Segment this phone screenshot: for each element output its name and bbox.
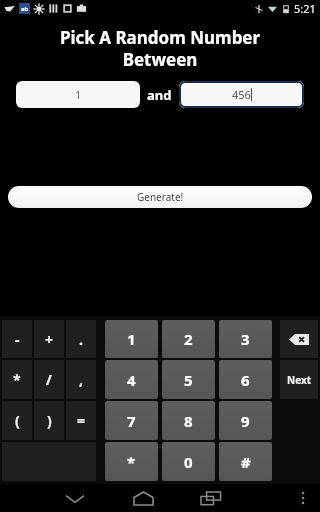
staticText: = bbox=[77, 411, 86, 430]
button[interactable]: , bbox=[66, 360, 96, 399]
button[interactable]: 6 bbox=[219, 360, 272, 399]
button[interactable]: 7 bbox=[105, 401, 158, 440]
button[interactable]: 2 bbox=[162, 320, 215, 358]
staticText: 9 bbox=[241, 411, 250, 431]
staticText: 456 bbox=[232, 87, 251, 102]
staticText: , bbox=[79, 370, 83, 389]
staticText: Pick A Random Number Between bbox=[12, 26, 308, 71]
button[interactable]: 456 bbox=[179, 81, 304, 108]
staticText: - bbox=[15, 330, 20, 349]
staticText: 1 bbox=[75, 87, 82, 102]
button[interactable]: 5 bbox=[162, 360, 215, 399]
button[interactable]: 0 bbox=[162, 442, 215, 481]
button[interactable]: * bbox=[105, 442, 158, 481]
button[interactable]: # bbox=[219, 442, 272, 481]
button[interactable]: 9 bbox=[219, 401, 272, 440]
button[interactable]: 1 bbox=[105, 320, 158, 358]
staticText: + bbox=[45, 330, 54, 349]
button[interactable]: ) bbox=[34, 401, 64, 440]
button[interactable]: More options bbox=[290, 484, 316, 512]
staticText: 3 bbox=[241, 329, 250, 349]
staticText: * bbox=[127, 452, 136, 472]
button[interactable]: Recent apps bbox=[192, 484, 230, 512]
button[interactable]: 8 bbox=[162, 401, 215, 440]
button[interactable]: = bbox=[66, 401, 96, 440]
button[interactable]: ( bbox=[2, 401, 32, 440]
staticText: 4 bbox=[127, 370, 136, 390]
button[interactable]: Next bbox=[280, 360, 318, 399]
button[interactable]: * bbox=[2, 360, 32, 399]
staticText: 0 bbox=[184, 452, 193, 472]
staticText: 5:21 bbox=[294, 1, 316, 16]
staticText: # bbox=[241, 452, 251, 472]
staticText: ( bbox=[15, 411, 20, 430]
button[interactable]: Backspace bbox=[280, 320, 318, 358]
staticText: Next bbox=[287, 373, 312, 387]
staticText: 1 bbox=[127, 329, 136, 349]
button[interactable]: - bbox=[2, 320, 32, 358]
staticText: and bbox=[147, 86, 172, 104]
button[interactable]: + bbox=[34, 320, 64, 358]
staticText: Generate! bbox=[137, 190, 184, 204]
staticText: / bbox=[46, 370, 52, 389]
staticText: ) bbox=[47, 411, 52, 430]
staticText: * bbox=[13, 370, 21, 389]
button[interactable]: 1 bbox=[16, 81, 140, 108]
staticText: 5 bbox=[184, 370, 193, 390]
staticText: 8 bbox=[184, 411, 193, 431]
button[interactable]: Generate! bbox=[8, 186, 312, 208]
button[interactable]: 4 bbox=[105, 360, 158, 399]
button[interactable]: Hide keyboard bbox=[56, 484, 94, 512]
staticText: . bbox=[79, 330, 83, 349]
staticText: ab bbox=[21, 5, 29, 13]
staticText: 7 bbox=[127, 411, 136, 431]
button[interactable]: / bbox=[34, 360, 64, 399]
staticText: 2 bbox=[184, 329, 193, 349]
button[interactable]: 3 bbox=[219, 320, 272, 358]
button[interactable]: Home bbox=[124, 484, 162, 512]
button[interactable]: . bbox=[66, 320, 96, 358]
staticText: 6 bbox=[241, 370, 250, 390]
